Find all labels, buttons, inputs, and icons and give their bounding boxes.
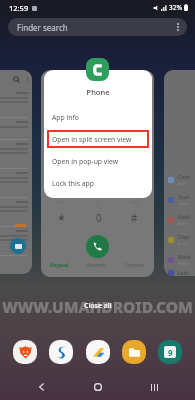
button[interactable]: Recents	[143, 376, 165, 398]
staticText: Wallp	[178, 254, 192, 261]
button[interactable]: Internet	[49, 340, 73, 364]
staticText: Block	[178, 221, 187, 226]
button[interactable]: App info	[44, 107, 152, 127]
button[interactable]: Files	[122, 340, 146, 364]
staticText: Soun	[178, 194, 190, 201]
button[interactable]	[0, 70, 32, 274]
staticText: Sound	[178, 201, 189, 206]
staticText: Displ	[178, 234, 190, 241]
staticText: Wallpa	[178, 261, 190, 266]
button[interactable]: Finder search	[8, 18, 187, 36]
staticText: App info	[52, 113, 79, 122]
staticText: #	[131, 211, 138, 225]
staticText: Keypad	[50, 262, 69, 269]
staticText: Contacts	[124, 262, 145, 269]
staticText: Phone	[44, 87, 152, 97]
staticText: Open in pop-up view	[52, 157, 119, 166]
staticText: Bright	[178, 241, 189, 246]
button[interactable]: Calendar	[158, 340, 182, 364]
staticText: WWW.UMAHDROID.COM	[0, 296, 195, 317]
button[interactable]: Brave	[13, 340, 37, 364]
button[interactable]: Open in pop-up view	[44, 151, 152, 171]
button[interactable]: PQRS	[41, 70, 154, 277]
button[interactable]: Drive	[86, 340, 110, 364]
staticText: Recents	[87, 262, 106, 269]
staticText: Wi-Fi	[178, 181, 187, 186]
staticText: Close all	[84, 301, 112, 311]
staticText: Finder search	[17, 22, 68, 33]
staticText: 32%	[169, 3, 182, 12]
button[interactable]: Back	[30, 376, 52, 398]
staticText: Lock this app	[52, 179, 94, 188]
staticText: 12:59	[9, 3, 29, 13]
button[interactable]: Open in split screen view	[44, 129, 152, 149]
button[interactable]: Conn	[164, 70, 195, 276]
staticText: 0	[96, 211, 102, 225]
button[interactable]: Close all	[79, 300, 117, 312]
staticText: 9	[168, 347, 173, 358]
staticText: Notif	[178, 214, 190, 221]
button[interactable]: Home	[87, 376, 109, 398]
staticText: Open in split screen view	[52, 135, 132, 144]
button[interactable]: Lock this app	[44, 173, 152, 193]
staticText: ∗	[57, 212, 66, 224]
staticText: Conn	[178, 174, 191, 181]
staticText: Lock	[178, 270, 189, 276]
button[interactable]: Call	[86, 235, 109, 258]
